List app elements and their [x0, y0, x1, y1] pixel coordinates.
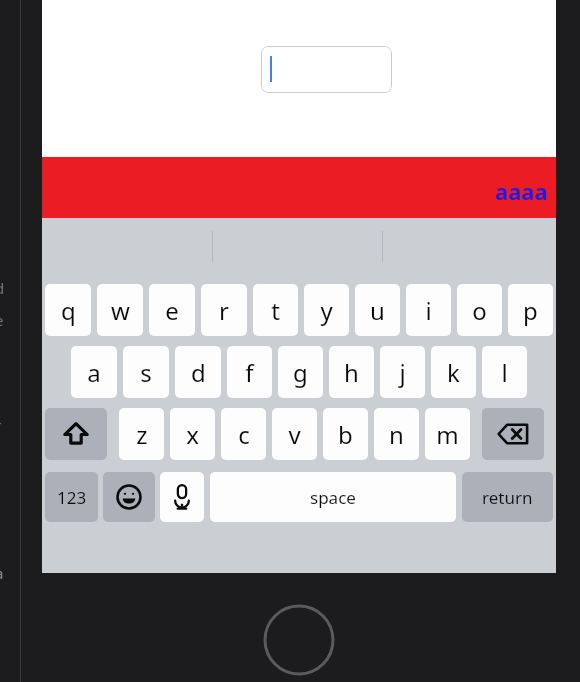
button[interactable] [261, 46, 392, 93]
staticText: f [245, 356, 254, 389]
staticText: h [344, 356, 359, 389]
staticText: m [436, 418, 459, 451]
button[interactable]: e [149, 284, 195, 336]
button[interactable]: b [323, 408, 368, 460]
staticText: r [0, 415, 2, 435]
button[interactable]: f [227, 346, 272, 398]
staticText: c [238, 418, 250, 451]
staticText: l [501, 356, 508, 389]
button[interactable]: k [431, 346, 476, 398]
button[interactable]: i [406, 284, 451, 336]
button[interactable]: s [123, 346, 169, 398]
staticText: x [186, 418, 199, 451]
staticText: p [523, 294, 538, 327]
staticText: j [399, 356, 406, 389]
staticText: o [472, 294, 487, 327]
staticText: 123 [57, 486, 87, 509]
button[interactable]: c [221, 408, 266, 460]
button[interactable]: Emoji [103, 472, 155, 522]
button[interactable]: l [482, 346, 527, 398]
button[interactable]: space [210, 472, 456, 522]
staticText: z [136, 418, 148, 451]
staticText: a [0, 563, 4, 583]
button[interactable]: z [119, 408, 164, 460]
button[interactable]: p [508, 284, 553, 336]
button[interactable]: a [71, 346, 117, 398]
staticText: i [425, 294, 432, 327]
staticText: n [389, 418, 404, 451]
staticText: t [271, 294, 280, 327]
staticText: s [140, 356, 152, 389]
button[interactable]: d [175, 346, 221, 398]
staticText: g [293, 356, 308, 389]
staticText: b [338, 418, 353, 451]
button[interactable]: Home [263, 604, 335, 676]
staticText: a [87, 356, 101, 389]
button[interactable]: w [97, 284, 143, 336]
button[interactable]: u [355, 284, 400, 336]
button[interactable]: Dictation [160, 472, 204, 522]
staticText: u [370, 294, 385, 327]
staticText: w [111, 294, 130, 327]
button[interactable]: v [272, 408, 317, 460]
button[interactable]: g [278, 346, 323, 398]
staticText: aaaa [495, 176, 548, 206]
button[interactable]: r [201, 284, 247, 336]
staticText: r [219, 294, 229, 327]
staticText: e [165, 294, 179, 327]
staticText: e [0, 310, 4, 330]
button[interactable]: n [374, 408, 419, 460]
staticText: q [61, 294, 76, 327]
button[interactable]: x [170, 408, 215, 460]
button[interactable]: y [304, 284, 349, 336]
button[interactable]: j [380, 346, 425, 398]
button[interactable]: 123 [45, 472, 98, 522]
staticText: return [482, 486, 533, 509]
staticText: k [447, 356, 460, 389]
button[interactable]: h [329, 346, 374, 398]
button[interactable]: m [425, 408, 470, 460]
button[interactable]: t [253, 284, 298, 336]
staticText: d [0, 278, 5, 298]
staticText: d [191, 356, 206, 389]
staticText: y [320, 294, 333, 327]
button[interactable]: Shift [45, 408, 107, 460]
button[interactable]: q [45, 284, 91, 336]
button[interactable]: Backspace [482, 408, 544, 460]
button[interactable]: return [462, 472, 553, 522]
button[interactable]: o [457, 284, 502, 336]
staticText: space [310, 486, 356, 509]
staticText: v [288, 418, 301, 451]
